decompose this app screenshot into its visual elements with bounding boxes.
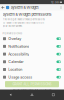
- button[interactable]: More options: [59, 4, 63, 11]
- staticText: Location: [8, 67, 22, 72]
- button[interactable]: Accessibility: [0, 50, 64, 58]
- staticText: to show live system information on: [2, 21, 43, 24]
- staticText: Usage access: [8, 75, 32, 79]
- button[interactable]: Back: [0, 4, 6, 11]
- staticText: The widget needs these permissions: [2, 18, 44, 21]
- staticText: GRANT ALL PERMISSIONS: [12, 82, 51, 86]
- button[interactable]: Notifications: [0, 42, 64, 50]
- staticText: 12:30: [51, 1, 59, 4]
- button[interactable]: Usage access: [0, 73, 64, 81]
- staticText: your home screen.: [2, 25, 22, 28]
- button[interactable]: Back: [0, 93, 21, 96]
- button[interactable]: Home: [21, 93, 43, 96]
- button[interactable]: Overlay: [0, 35, 64, 42]
- staticText: System & Widget: [11, 5, 39, 10]
- button[interactable]: GRANT ALL PERMISSIONS: [5, 81, 59, 87]
- staticText: Calendar: [8, 60, 23, 64]
- button[interactable]: Calendar: [0, 58, 64, 66]
- staticText: Overlay: [8, 36, 21, 41]
- staticText: PERMISSIONS: [2, 32, 22, 35]
- button[interactable]: Location: [0, 66, 64, 73]
- staticText: Accessibility: [8, 52, 29, 56]
- staticText: Notifications: [8, 44, 29, 49]
- button[interactable]: Recent apps: [43, 93, 64, 96]
- staticText: You can change these later in Settings: [12, 89, 51, 92]
- staticText: System & Widget permissions: [2, 12, 51, 17]
